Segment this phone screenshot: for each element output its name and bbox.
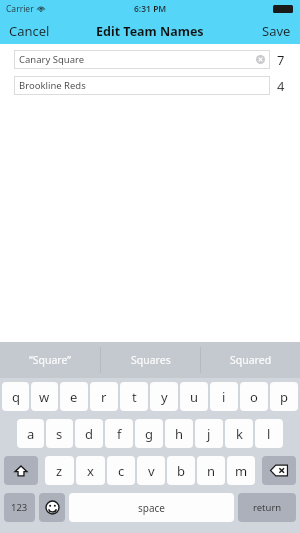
staticText: n <box>207 462 216 480</box>
button[interactable]: t <box>120 382 148 411</box>
button[interactable]: z <box>45 456 74 485</box>
button[interactable]: Shift <box>4 456 38 485</box>
staticText: space <box>138 501 165 515</box>
other: Clear text <box>256 55 265 64</box>
staticText: p <box>280 388 288 406</box>
button[interactable]: w <box>31 382 58 411</box>
button[interactable]: Save <box>253 18 300 44</box>
button[interactable]: n <box>197 456 225 485</box>
staticText: Edit Team Names <box>96 23 204 40</box>
staticText: m <box>235 462 248 480</box>
button[interactable]: h <box>165 419 193 448</box>
button[interactable]: s <box>46 419 73 448</box>
button[interactable]: return <box>238 493 296 522</box>
staticText: i <box>222 388 226 406</box>
button[interactable]: p <box>270 382 298 411</box>
button[interactable]: f <box>105 419 133 448</box>
button[interactable]: o <box>240 382 268 411</box>
staticText: Carrier <box>6 3 34 15</box>
button[interactable]: l <box>255 419 283 448</box>
button[interactable]: Cancel <box>0 18 59 44</box>
button[interactable]: Brookline Reds <box>14 76 270 95</box>
button[interactable]: j <box>195 419 223 448</box>
button[interactable]: Backspace <box>262 456 296 485</box>
staticText: g <box>145 425 153 443</box>
button[interactable]: k <box>225 419 253 448</box>
staticText: return <box>253 501 282 514</box>
button[interactable]: q <box>2 382 29 411</box>
button[interactable]: b <box>167 456 195 485</box>
staticText: k <box>236 425 243 443</box>
button[interactable]: Squared <box>201 342 300 378</box>
staticText: c <box>118 462 125 480</box>
staticText: Squared <box>230 353 272 367</box>
button[interactable]: d <box>75 419 103 448</box>
button[interactable]: e <box>60 382 88 411</box>
button[interactable]: u <box>180 382 208 411</box>
staticText: j <box>207 425 211 443</box>
button[interactable]: v <box>137 456 165 485</box>
staticText: f <box>117 425 122 443</box>
button[interactable]: c <box>107 456 135 485</box>
staticText: Canary Square <box>19 53 256 66</box>
staticText: t <box>132 388 137 406</box>
staticText: s <box>56 425 63 443</box>
button[interactable]: m <box>227 456 255 485</box>
staticText: Squares <box>131 353 171 367</box>
button[interactable]: i <box>210 382 238 411</box>
staticText: Save <box>262 22 291 40</box>
staticText: “Square” <box>29 353 72 367</box>
staticText: b <box>177 462 185 480</box>
button[interactable]: 123 <box>4 493 35 522</box>
staticText: z <box>56 462 63 480</box>
staticText: o <box>250 388 258 406</box>
button[interactable]: Emoji keyboard <box>39 493 65 522</box>
staticText: v <box>148 462 155 480</box>
button[interactable]: space <box>69 493 234 522</box>
staticText: l <box>267 425 271 443</box>
staticText: r <box>101 388 107 406</box>
staticText: q <box>12 388 20 406</box>
staticText: 4 <box>277 77 285 95</box>
button[interactable]: a <box>17 419 44 448</box>
staticText: x <box>87 462 94 480</box>
staticText: Cancel <box>9 22 50 40</box>
staticText: e <box>70 388 78 406</box>
staticText: u <box>190 388 199 406</box>
staticText: w <box>39 388 50 406</box>
staticText: 7 <box>277 51 285 69</box>
staticText: d <box>85 425 93 443</box>
button[interactable]: Squares <box>101 342 200 378</box>
staticText: y <box>161 388 168 406</box>
staticText: 6:31 PM <box>134 3 167 15</box>
button[interactable]: x <box>76 456 105 485</box>
button[interactable]: y <box>150 382 178 411</box>
button[interactable]: Canary Square <box>14 50 270 69</box>
staticText: Brookline Reds <box>19 79 265 92</box>
staticText: a <box>27 425 35 443</box>
staticText: 123 <box>11 501 28 514</box>
button[interactable]: “Square” <box>0 342 100 378</box>
button[interactable]: g <box>135 419 163 448</box>
staticText: h <box>175 425 184 443</box>
button[interactable]: r <box>90 382 118 411</box>
